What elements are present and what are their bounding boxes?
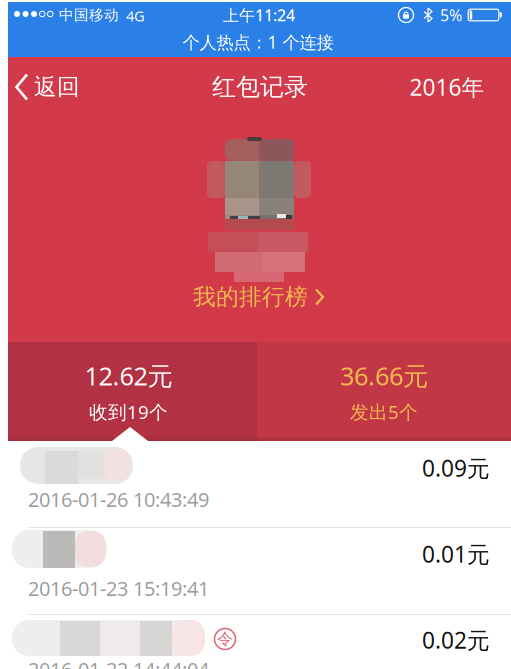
staticText: 36.66元 [340,359,428,392]
staticText: 收到19个 [89,399,168,424]
staticText: 令 [217,629,233,649]
staticText: 上午11:24 [223,4,295,26]
button[interactable]: 36.66元 [257,342,511,441]
staticText: 2016-01-26 10:43:49 [28,486,209,513]
staticText: 红包记录 [212,72,308,102]
staticText: 2016-01-22 14:44:04 [28,656,209,669]
staticText: 个人热点：1 个连接 [182,30,333,53]
button[interactable]: 返回 [0,57,80,117]
staticText: 0.09元 [422,453,490,483]
staticText: 2016年 [409,72,484,102]
button[interactable]: 0.01元 [0,528,511,615]
staticText: 0.02元 [422,625,490,655]
staticText: 5% [440,4,462,26]
staticText: 12.62元 [84,359,172,392]
staticText: 0.01元 [422,539,490,569]
button[interactable]: 12.62元 [0,342,257,441]
button[interactable]: 2016年 [409,57,484,117]
button[interactable]: 我的排行榜 [193,283,325,311]
staticText: 发出5个 [350,399,418,424]
button[interactable]: 0.09元 [0,441,511,528]
staticText: 中国移动 [59,6,119,24]
staticText: 2016-01-23 15:19:41 [28,575,209,602]
button[interactable]: 令 [0,615,511,669]
staticText: 返回 [34,73,80,101]
staticText: 我的排行榜 [193,283,308,311]
staticText: 4G [126,6,145,25]
